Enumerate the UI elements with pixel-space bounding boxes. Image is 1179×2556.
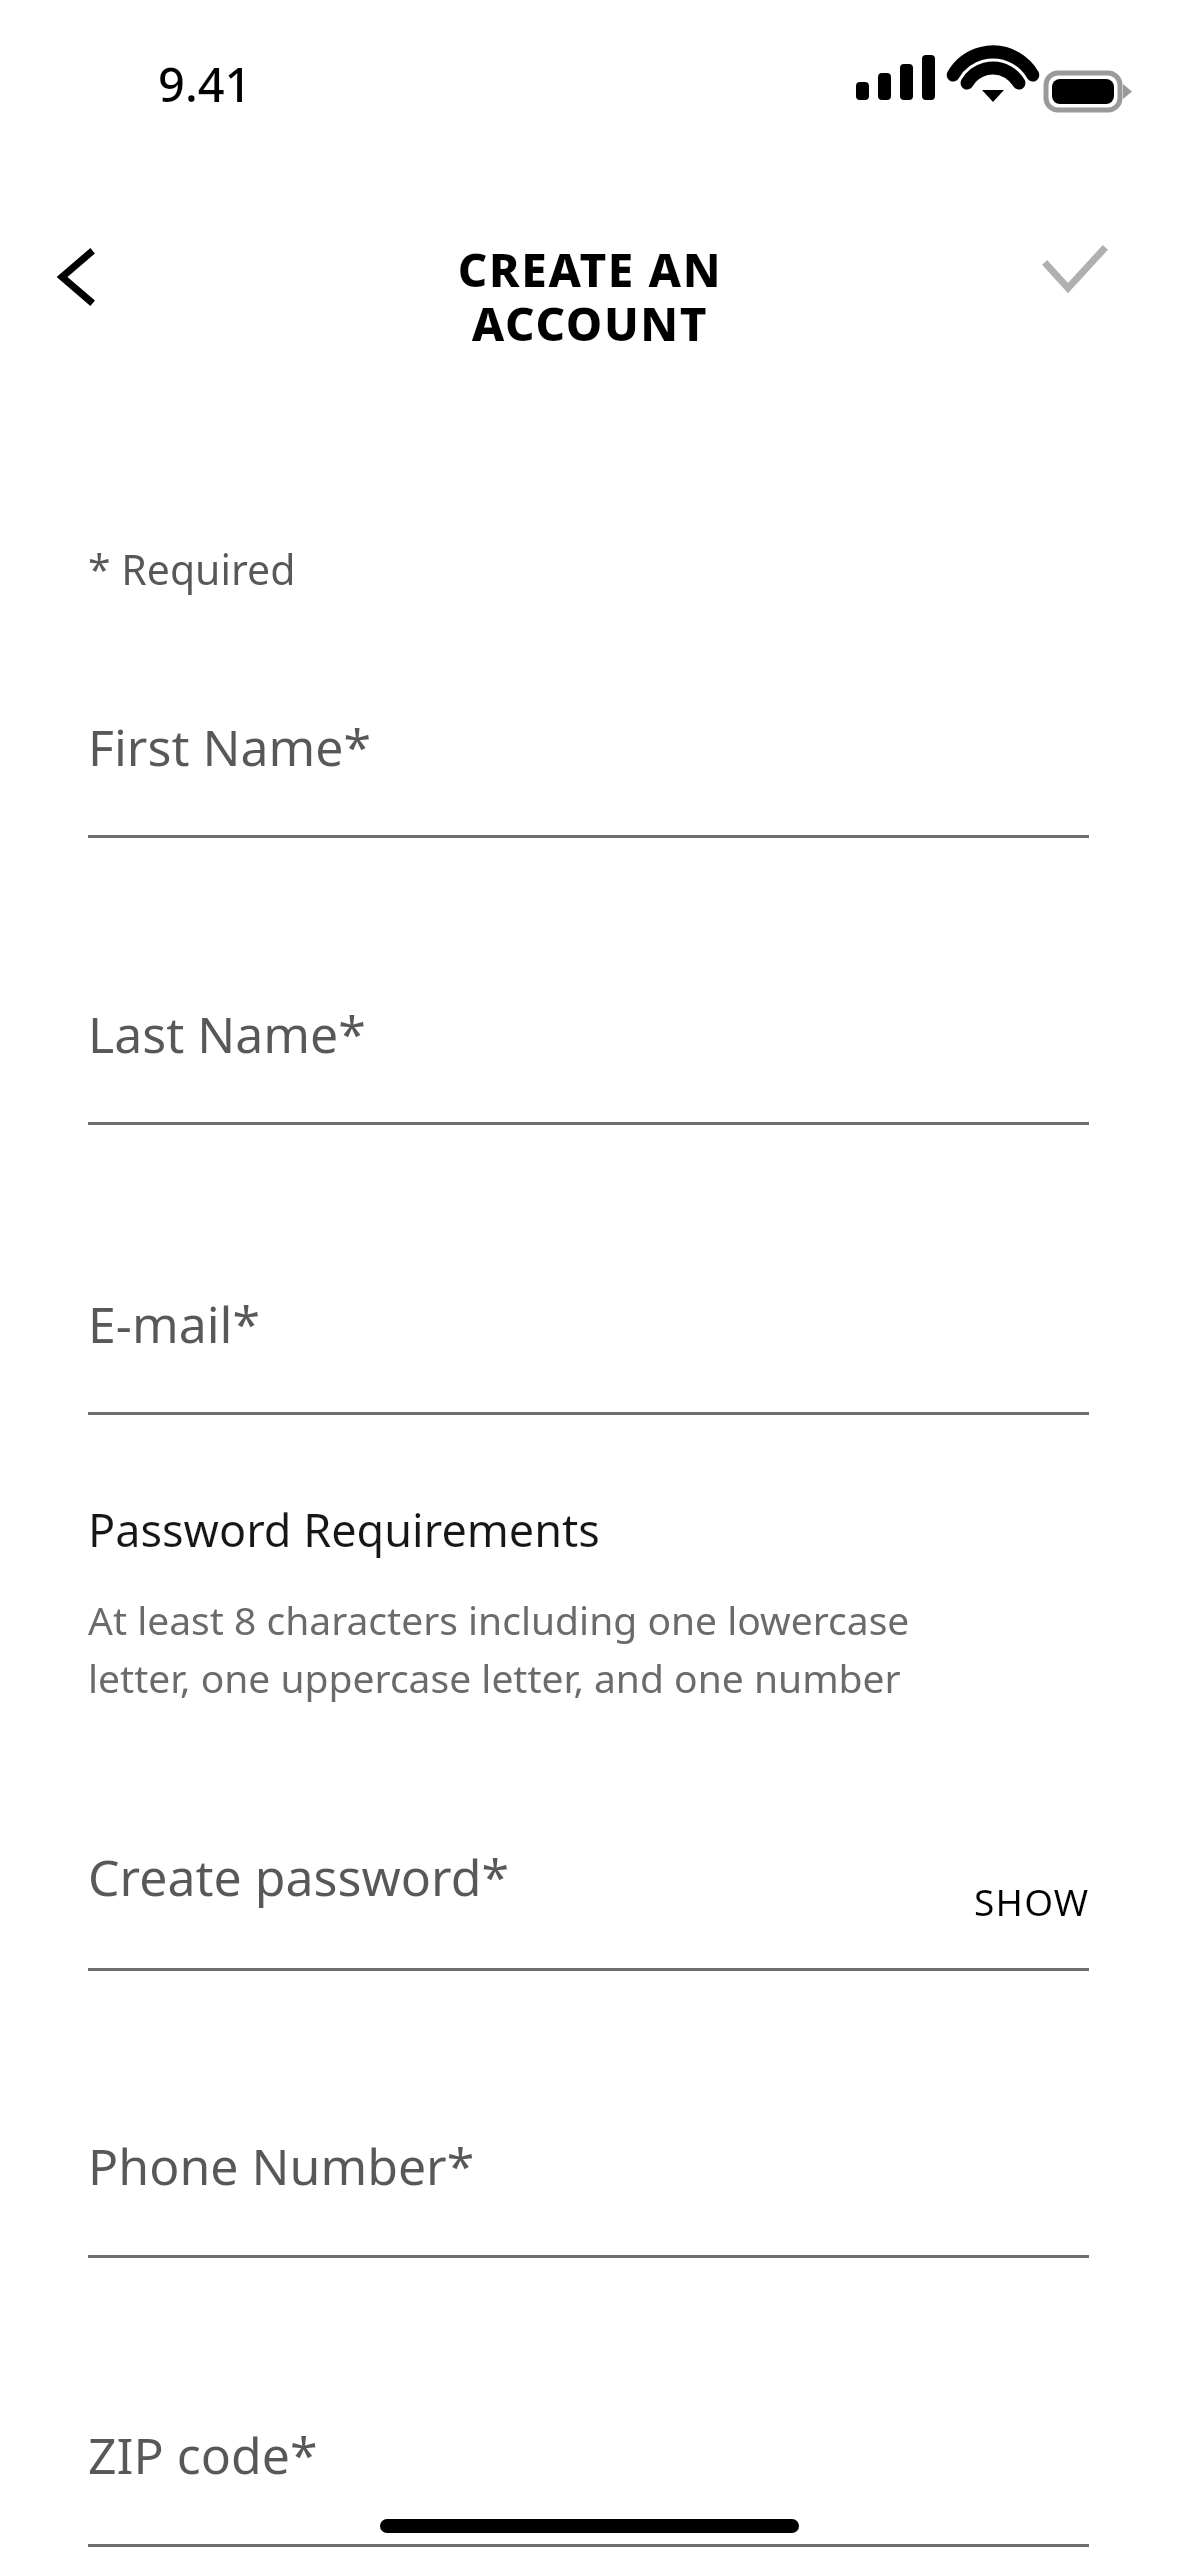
button[interactable]: Confirm (1020, 222, 1130, 332)
staticText: Last Name* (88, 1000, 366, 1068)
button[interactable]: Back (28, 222, 138, 332)
staticText: Password Requirements (88, 1499, 600, 1560)
staticText: SHOW (974, 1876, 1090, 1926)
staticText: First Name* (88, 713, 372, 781)
staticText: At least 8 characters including one lowe… (88, 1593, 1093, 1704)
staticText: 9.41 (158, 52, 252, 116)
staticText: Create password* (88, 1843, 509, 1911)
button[interactable]: E-mail* (88, 1272, 1089, 1392)
staticText: CREATE AN ACCOUNT (290, 238, 890, 355)
staticText: * Required (88, 541, 296, 597)
staticText: E-mail* (88, 1290, 261, 1358)
button[interactable]: Phone Number* (88, 2114, 1089, 2234)
button[interactable]: ZIP code* (88, 2403, 1089, 2523)
button[interactable]: Create password* (88, 1825, 1089, 1945)
button[interactable]: SHOW (900, 1858, 1090, 1944)
staticText: ZIP code* (88, 2421, 318, 2489)
button[interactable]: Last Name* (88, 982, 1089, 1102)
button[interactable]: First Name* (88, 695, 1089, 815)
staticText: Phone Number* (88, 2132, 475, 2200)
